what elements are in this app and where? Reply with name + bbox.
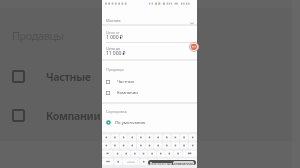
button[interactable]: Частные [102, 77, 197, 86]
staticText: Сортировка [106, 109, 127, 114]
staticText: По умолчанию [115, 120, 146, 126]
button[interactable]: Компании [102, 88, 197, 97]
button[interactable]: Москва [102, 9, 197, 24]
staticText: Возможности [150, 161, 172, 165]
staticText: Цена до [106, 46, 121, 51]
staticText: 1 000 ₽ [106, 34, 123, 41]
staticText: 11 000 ₽ [106, 50, 126, 57]
staticText: Цена от [106, 30, 120, 35]
staticText: Москва [106, 18, 121, 23]
staticText: Частные [46, 70, 91, 83]
button[interactable]: По умолчанию [102, 118, 197, 127]
button[interactable]: Возможности [148, 160, 196, 165]
staticText: Компании [46, 109, 101, 122]
staticText: Продавцы [12, 28, 64, 43]
staticText: Продавцы [106, 67, 125, 72]
button[interactable]: Частные [0, 70, 102, 83]
staticText: клавиатуры [174, 161, 193, 165]
staticText: Частные [117, 79, 135, 85]
staticText: Компании [117, 90, 138, 96]
button[interactable]: Компании [0, 109, 102, 122]
